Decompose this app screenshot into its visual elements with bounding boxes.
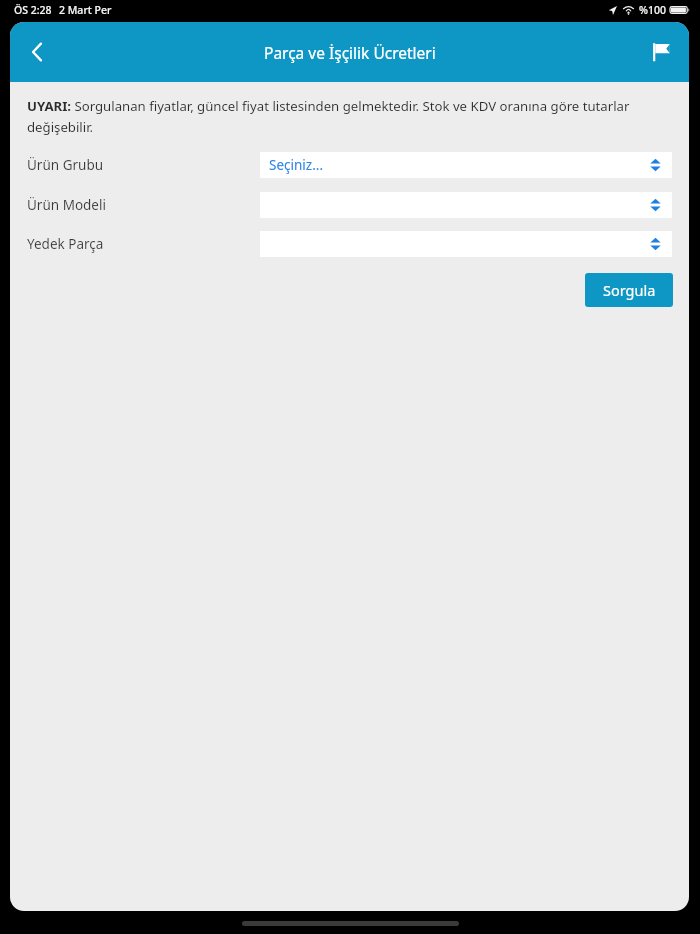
button[interactable]: Flag	[640, 31, 682, 73]
button[interactable]	[260, 231, 672, 257]
staticText: Seçiniz...	[269, 156, 324, 174]
button[interactable]: Back	[16, 31, 58, 73]
staticText: Ürün Grubu	[27, 156, 104, 174]
staticText: ÖS 2:28	[14, 3, 52, 17]
staticText: Yedek Parça	[27, 235, 104, 253]
button[interactable]	[260, 192, 672, 218]
button[interactable]: Sorgula	[585, 273, 673, 307]
staticText: %100	[639, 3, 666, 17]
button[interactable]: Seçiniz...	[260, 152, 672, 178]
staticText: UYARI: Sorgulanan fiyatlar, güncel fiyat…	[27, 97, 667, 136]
staticText: Sorgula	[603, 280, 656, 300]
staticText: Parça ve İşçilik Ücretleri	[264, 42, 436, 63]
staticText: 2 Mart Per	[59, 3, 112, 17]
staticText: Ürün Modeli	[27, 196, 106, 214]
